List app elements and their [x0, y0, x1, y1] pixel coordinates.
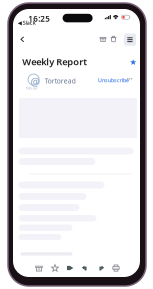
- staticText: @: [31, 75, 41, 89]
- button[interactable]: Forward: [94, 261, 107, 274]
- button[interactable]: Archive: [32, 261, 45, 274]
- button[interactable]: Delete: [107, 32, 120, 45]
- button[interactable]: Unsubscribe: [98, 77, 129, 84]
- button[interactable]: Label: [63, 261, 76, 274]
- button[interactable]: Reply: [79, 261, 92, 274]
- button[interactable]: More options: [127, 76, 133, 83]
- staticText: •••: [127, 76, 133, 83]
- button[interactable]: More: [124, 33, 136, 46]
- button[interactable]: Print: [109, 261, 122, 274]
- button[interactable]: Archive: [96, 32, 109, 45]
- staticText: ◀ Slack: [18, 19, 36, 26]
- staticText: Yahoo!: [26, 85, 38, 90]
- button[interactable]: Back: [15, 32, 30, 47]
- staticText: Weekly Report: [22, 55, 87, 68]
- staticText: Unsubscribe: [98, 77, 129, 84]
- button[interactable]: Star: [127, 56, 139, 68]
- staticText: Tortoread: [45, 76, 76, 85]
- button[interactable]: Star: [48, 261, 61, 274]
- staticText: 16:25: [28, 13, 50, 24]
